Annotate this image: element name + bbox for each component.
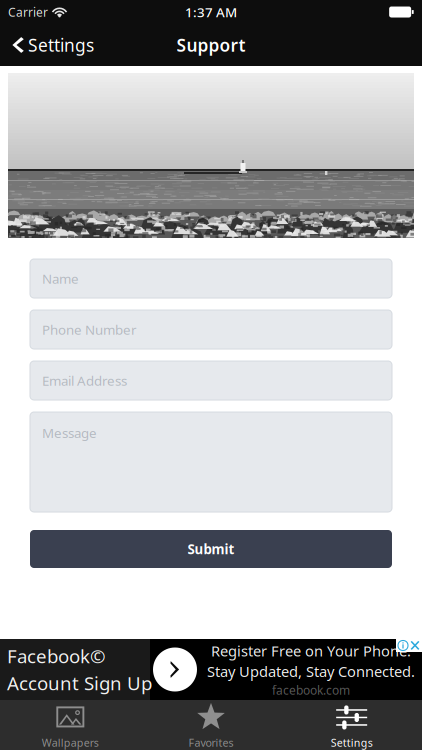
- button[interactable]: Submit: [30, 530, 392, 568]
- button[interactable]: Favorites: [141, 700, 281, 750]
- staticText: Stay Updated, Stay Connected.: [207, 661, 415, 681]
- staticText: facebook.com: [272, 682, 350, 698]
- staticText: Account Sign Up: [7, 670, 152, 695]
- staticText: Register Free on Your Phone.: [211, 641, 411, 661]
- button[interactable]: Message: [30, 412, 392, 512]
- staticText: Carrier: [8, 4, 48, 20]
- button[interactable]: Wallpapers: [0, 700, 141, 750]
- staticText: Wallpapers: [42, 735, 99, 750]
- staticText: Settings: [331, 735, 373, 750]
- staticText: Settings: [28, 33, 94, 56]
- button[interactable]: Name: [30, 259, 392, 298]
- button[interactable]: Facebook©: [0, 639, 422, 700]
- button[interactable]: Settings: [0, 24, 104, 66]
- button[interactable]: Settings: [281, 700, 422, 750]
- staticText: Name: [42, 270, 79, 287]
- button[interactable]: Phone Number: [30, 310, 392, 349]
- staticText: Submit: [187, 540, 234, 558]
- staticText: Facebook©: [7, 644, 106, 668]
- staticText: Phone Number: [42, 321, 137, 338]
- staticText: 1:37 AM: [185, 3, 237, 21]
- staticText: Favorites: [188, 735, 233, 750]
- staticText: Email Address: [42, 372, 127, 389]
- staticText: Support: [176, 33, 245, 56]
- button[interactable]: Email Address: [30, 361, 392, 400]
- staticText: Message: [42, 424, 97, 442]
